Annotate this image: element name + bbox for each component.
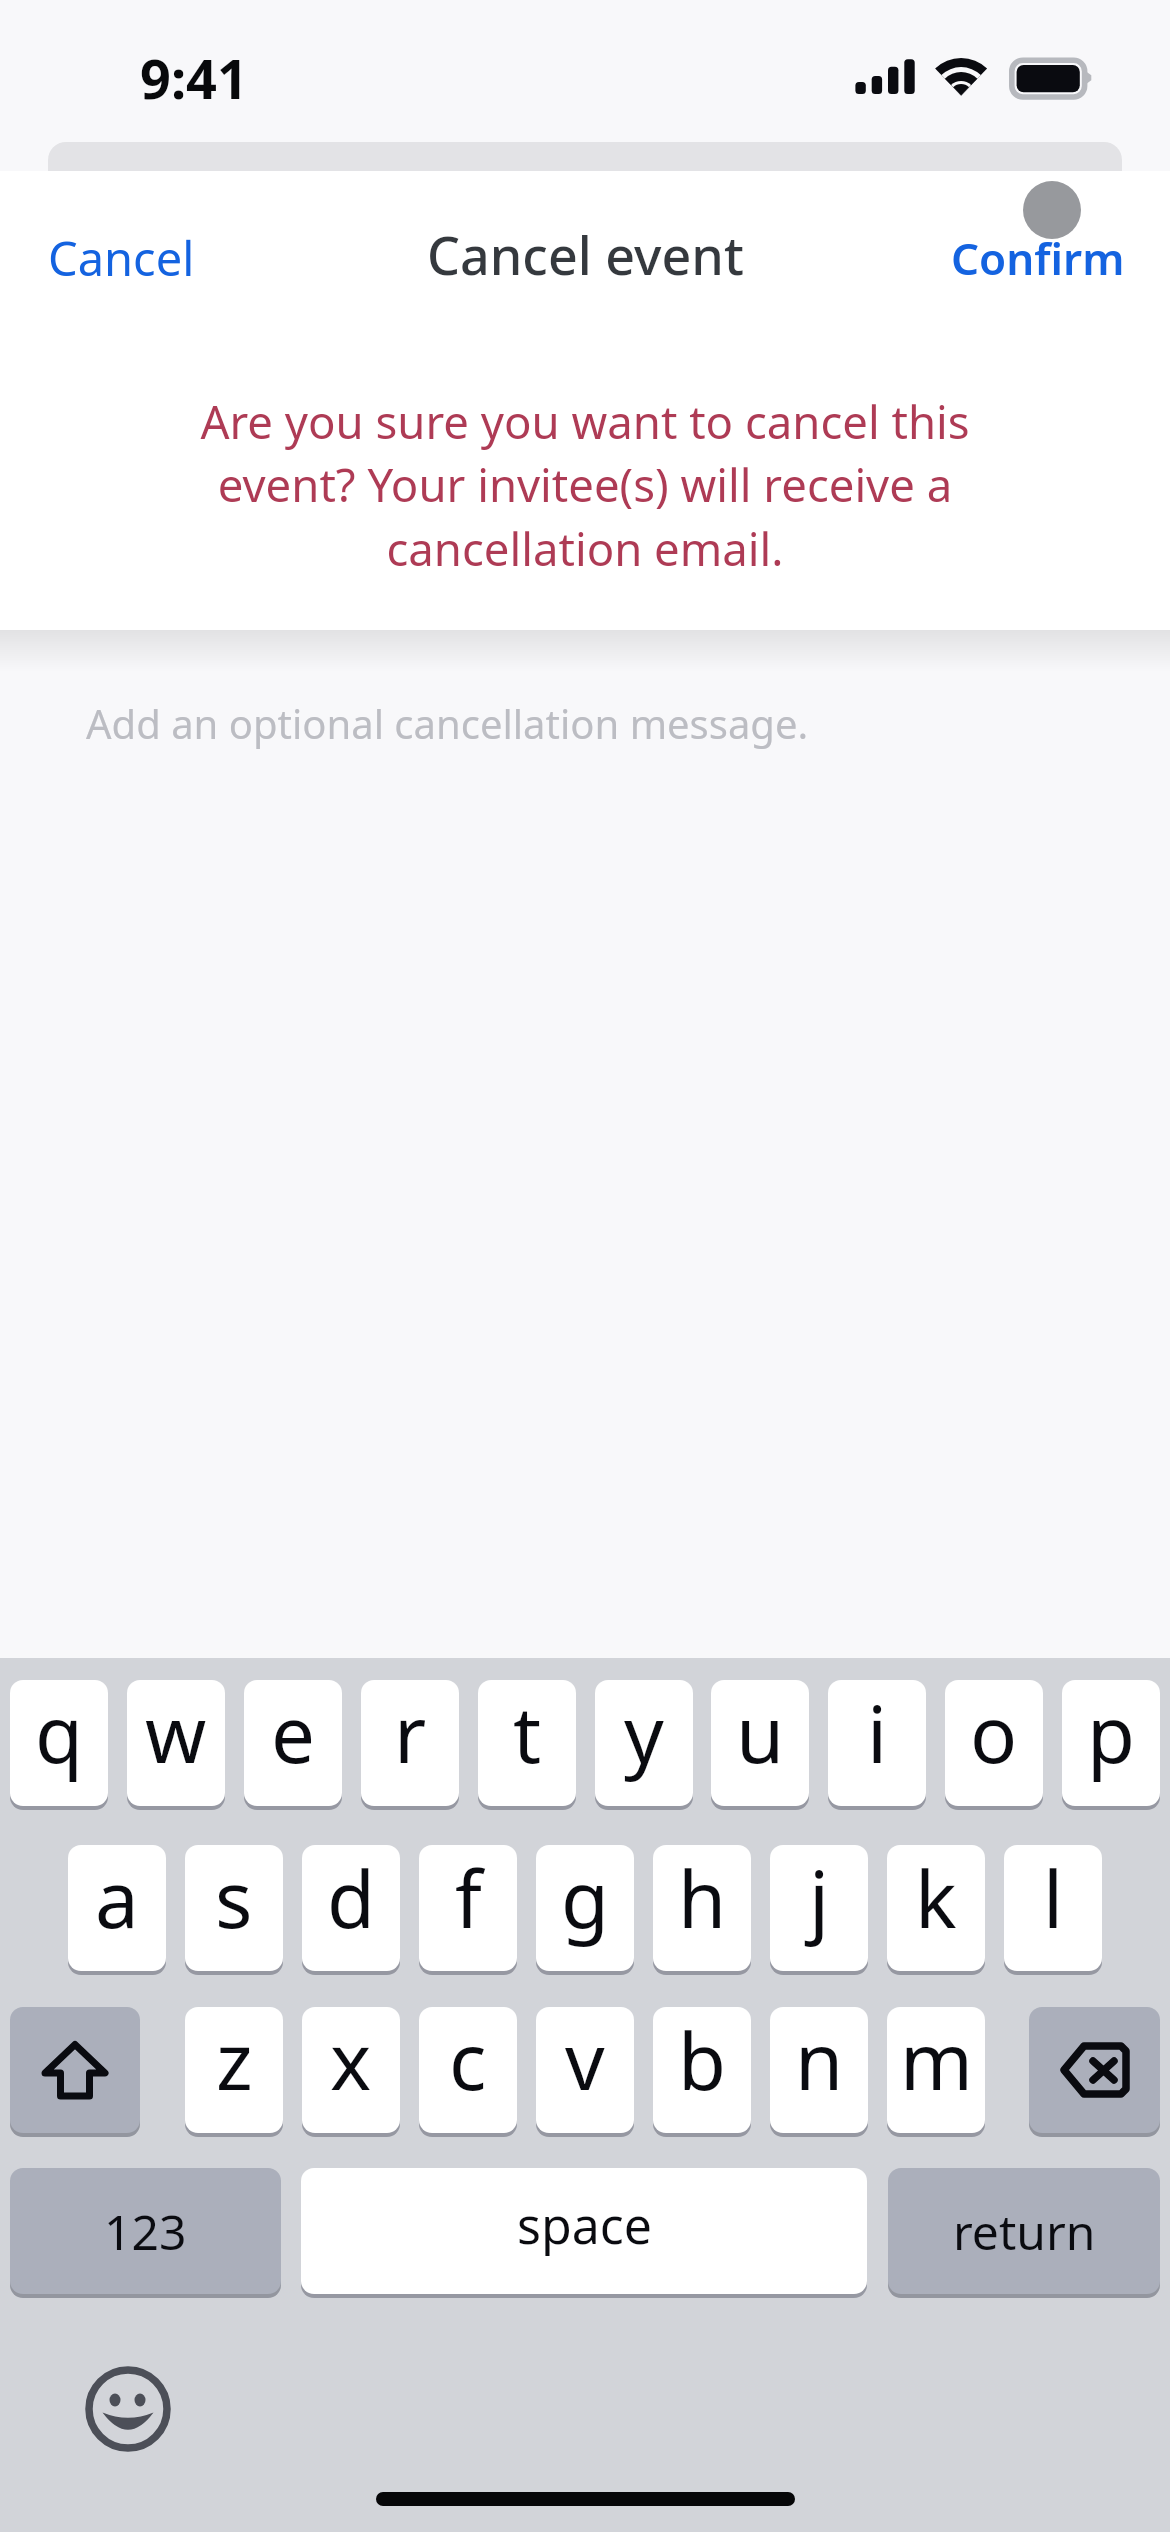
button[interactable]: k bbox=[887, 1845, 985, 1971]
button[interactable]: w bbox=[127, 1680, 225, 1806]
button[interactable]: f bbox=[419, 1845, 517, 1971]
staticText: t bbox=[513, 1680, 542, 1786]
staticText: s bbox=[215, 1845, 253, 1951]
button[interactable]: Add an optional cancellation message. bbox=[0, 656, 1170, 1658]
staticText: p bbox=[1087, 1680, 1135, 1786]
button[interactable]: i bbox=[828, 1680, 926, 1806]
staticText: k bbox=[915, 1845, 957, 1951]
staticText: l bbox=[1043, 1845, 1064, 1951]
button[interactable]: d bbox=[302, 1845, 400, 1971]
button[interactable]: return bbox=[888, 2168, 1160, 2294]
button[interactable]: r bbox=[361, 1680, 459, 1806]
button[interactable]: p bbox=[1062, 1680, 1160, 1806]
staticText: n bbox=[795, 2007, 844, 2113]
button[interactable]: m bbox=[887, 2007, 985, 2133]
staticText: c bbox=[449, 2007, 487, 2113]
button[interactable]: z bbox=[185, 2007, 283, 2133]
button[interactable]: b bbox=[653, 2007, 751, 2133]
staticText: Are you sure you want to cancel this eve… bbox=[178, 390, 992, 580]
button[interactable]: Backspace bbox=[1029, 2007, 1160, 2133]
button[interactable]: 123 bbox=[10, 2168, 281, 2294]
staticText: r bbox=[394, 1680, 427, 1786]
staticText: z bbox=[216, 2007, 253, 2113]
button[interactable]: h bbox=[653, 1845, 751, 1971]
staticText: return bbox=[953, 2199, 1096, 2264]
button[interactable]: t bbox=[478, 1680, 576, 1806]
button[interactable]: a bbox=[68, 1845, 166, 1971]
staticText: b bbox=[678, 2007, 726, 2113]
button[interactable]: j bbox=[770, 1845, 868, 1971]
staticText: space bbox=[517, 2191, 652, 2259]
button[interactable]: y bbox=[595, 1680, 693, 1806]
staticText: y bbox=[624, 1680, 664, 1786]
button[interactable]: l bbox=[1004, 1845, 1102, 1971]
staticText: v bbox=[565, 2007, 605, 2113]
button[interactable]: x bbox=[302, 2007, 400, 2133]
button[interactable]: u bbox=[711, 1680, 809, 1806]
staticText: e bbox=[271, 1680, 315, 1786]
staticText: f bbox=[455, 1845, 482, 1951]
button[interactable]: Emoji keyboard bbox=[87, 2368, 169, 2450]
staticText: i bbox=[867, 1680, 888, 1786]
staticText: j bbox=[809, 1845, 830, 1951]
button[interactable]: space bbox=[301, 2168, 867, 2294]
staticText: Cancel bbox=[48, 226, 195, 290]
staticText: d bbox=[327, 1845, 375, 1951]
staticText: 123 bbox=[104, 2199, 187, 2264]
staticText: Add an optional cancellation message. bbox=[86, 696, 809, 750]
staticText: 9:41 bbox=[140, 41, 248, 115]
staticText: o bbox=[970, 1680, 1018, 1786]
button[interactable]: Shift bbox=[10, 2007, 140, 2133]
staticText: a bbox=[95, 1845, 139, 1951]
staticText: Confirm bbox=[951, 228, 1125, 288]
button[interactable]: v bbox=[536, 2007, 634, 2133]
staticText: q bbox=[35, 1680, 83, 1786]
button[interactable]: Cancel bbox=[0, 196, 235, 320]
staticText: h bbox=[678, 1845, 727, 1951]
staticText: g bbox=[561, 1845, 609, 1951]
button[interactable]: g bbox=[536, 1845, 634, 1971]
staticText: w bbox=[145, 1680, 207, 1786]
button[interactable]: n bbox=[770, 2007, 868, 2133]
button[interactable]: Confirm bbox=[911, 198, 1170, 318]
button[interactable]: s bbox=[185, 1845, 283, 1971]
staticText: x bbox=[330, 2007, 372, 2113]
staticText: Cancel event bbox=[427, 219, 744, 290]
button[interactable]: c bbox=[419, 2007, 517, 2133]
staticText: m bbox=[900, 2007, 973, 2113]
staticText: u bbox=[736, 1680, 785, 1786]
button[interactable]: e bbox=[244, 1680, 342, 1806]
button[interactable]: o bbox=[945, 1680, 1043, 1806]
button[interactable]: q bbox=[10, 1680, 108, 1806]
